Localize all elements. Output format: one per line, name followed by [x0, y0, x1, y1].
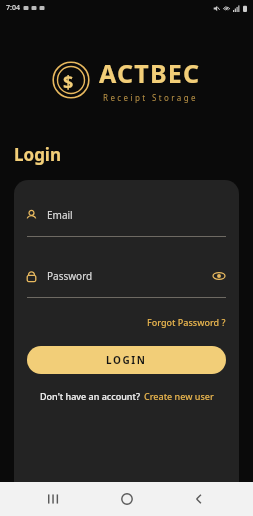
- button[interactable]: Create new user: [144, 390, 214, 402]
- staticText: LOGIN: [106, 353, 147, 367]
- button[interactable]: Forgot Password ?: [145, 314, 228, 330]
- staticText: Password: [47, 269, 93, 283]
- staticText: Receipt Storage: [103, 92, 198, 103]
- staticText: Don't have an account?: [40, 390, 140, 402]
- staticText: Create new user: [144, 390, 214, 402]
- button[interactable]: Password: [25, 263, 228, 289]
- staticText: 7:04: [6, 3, 20, 13]
- staticText: Email: [47, 208, 73, 222]
- button[interactable]: Show password: [210, 267, 228, 285]
- button[interactable]: LOGIN: [27, 346, 226, 374]
- staticText: Forgot Password ?: [147, 316, 226, 328]
- button[interactable]: Home: [108, 482, 146, 516]
- staticText: Login: [14, 143, 62, 166]
- staticText: $: [63, 70, 74, 95]
- button[interactable]: Email: [25, 202, 228, 228]
- button[interactable]: Recents: [35, 482, 73, 516]
- staticText: ACTBEC: [99, 56, 201, 90]
- button[interactable]: Back: [180, 482, 218, 516]
